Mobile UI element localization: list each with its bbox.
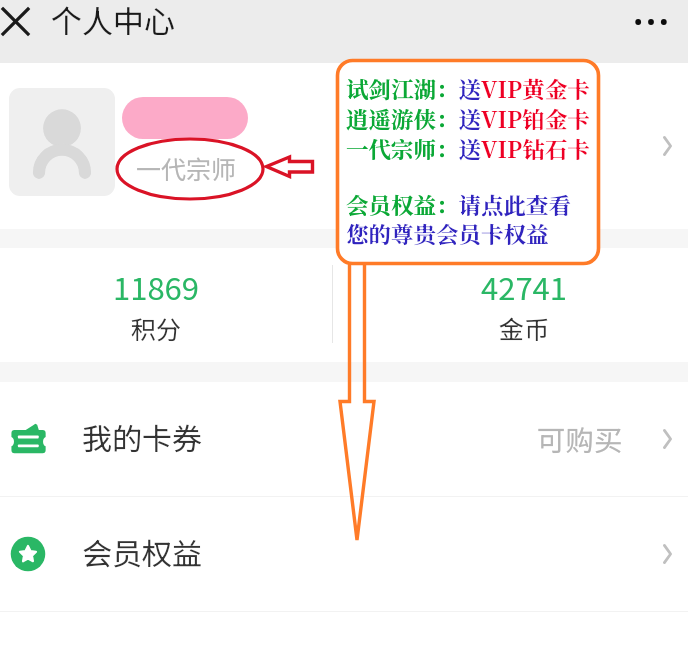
staticText: 我的卡券 [82, 415, 202, 458]
staticText: 一代宗师：送VIP钻石卡 [346, 132, 590, 164]
staticText: 逍遥游侠：送VIP铂金卡 [346, 102, 590, 134]
button[interactable]: 42741 [414, 248, 634, 362]
staticText: 42741 [481, 264, 568, 309]
staticText: 试剑江湖：送VIP黄金卡 [346, 72, 590, 104]
staticText: 积分 [131, 310, 182, 346]
staticText: 您的尊贵会员卡权益 [346, 217, 549, 249]
staticText: 会员权益 [82, 530, 202, 573]
staticText: 可购买 [537, 418, 623, 459]
button[interactable]: 我的卡券 [0, 382, 688, 496]
button[interactable]: Close [0, 1, 32, 41]
staticText: 一代宗师 [136, 150, 237, 186]
button[interactable]: 会员权益 [0, 497, 688, 611]
button[interactable]: More options [620, 0, 676, 50]
button[interactable]: 11869 [46, 248, 266, 362]
staticText: 会员权益：请点此查看 [346, 188, 572, 220]
staticText: 11869 [113, 264, 200, 309]
staticText: 个人中心 [51, 0, 175, 42]
staticText: 金币 [499, 310, 550, 346]
button[interactable]: 一代宗师 [0, 63, 688, 229]
